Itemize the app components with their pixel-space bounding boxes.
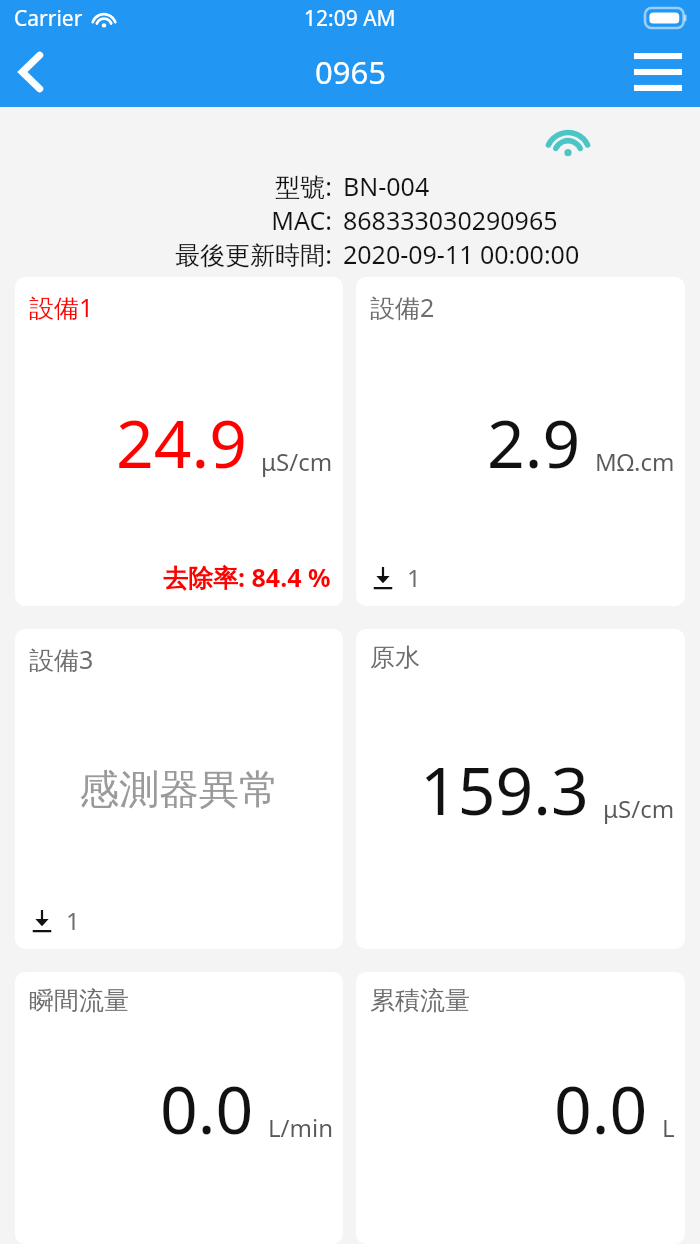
staticText: 設備1 bbox=[29, 290, 94, 324]
staticText: 0.0 bbox=[554, 1063, 648, 1153]
staticText: L/min bbox=[268, 1111, 333, 1144]
staticText: 2.9 bbox=[487, 397, 581, 487]
staticText: 1 bbox=[407, 561, 421, 594]
staticText: MΩ.cm bbox=[595, 445, 675, 478]
staticText: μS/cm bbox=[261, 445, 333, 478]
button[interactable]: 原水 bbox=[356, 629, 685, 949]
staticText: 設備2 bbox=[370, 290, 435, 324]
button[interactable]: 設備3 bbox=[15, 629, 343, 949]
staticText: 最後更新時間: bbox=[175, 237, 332, 271]
staticText: 去除率: 84.4 % bbox=[163, 560, 331, 594]
button[interactable]: 設備1 bbox=[15, 277, 343, 606]
staticText: Carrier bbox=[14, 4, 83, 33]
staticText: 瞬間流量 bbox=[29, 985, 129, 1016]
staticText: 2020-09-11 00:00:00 bbox=[343, 237, 580, 271]
staticText: 12:09 AM bbox=[304, 4, 396, 33]
staticText: 24.9 bbox=[116, 397, 247, 487]
staticText: L bbox=[662, 1111, 675, 1144]
button[interactable]: 累積流量 bbox=[356, 972, 685, 1244]
staticText: 累積流量 bbox=[370, 985, 470, 1016]
button[interactable]: Menu bbox=[616, 36, 700, 107]
staticText: 設備3 bbox=[29, 642, 94, 676]
staticText: 159.3 bbox=[420, 744, 589, 834]
staticText: 0.0 bbox=[160, 1063, 254, 1153]
button[interactable]: Back bbox=[0, 36, 62, 107]
staticText: 原水 bbox=[370, 642, 420, 673]
staticText: 868333030290965 bbox=[343, 203, 558, 237]
staticText: 0965 bbox=[315, 51, 386, 93]
staticText: 感測器異常 bbox=[79, 764, 279, 814]
staticText: BN-004 bbox=[343, 169, 430, 203]
button[interactable]: 瞬間流量 bbox=[15, 972, 343, 1244]
staticText: 型號: bbox=[275, 169, 332, 203]
staticText: μS/cm bbox=[603, 792, 675, 825]
button[interactable]: 設備2 bbox=[356, 277, 685, 606]
staticText: 1 bbox=[66, 904, 80, 937]
staticText: MAC: bbox=[271, 203, 332, 237]
